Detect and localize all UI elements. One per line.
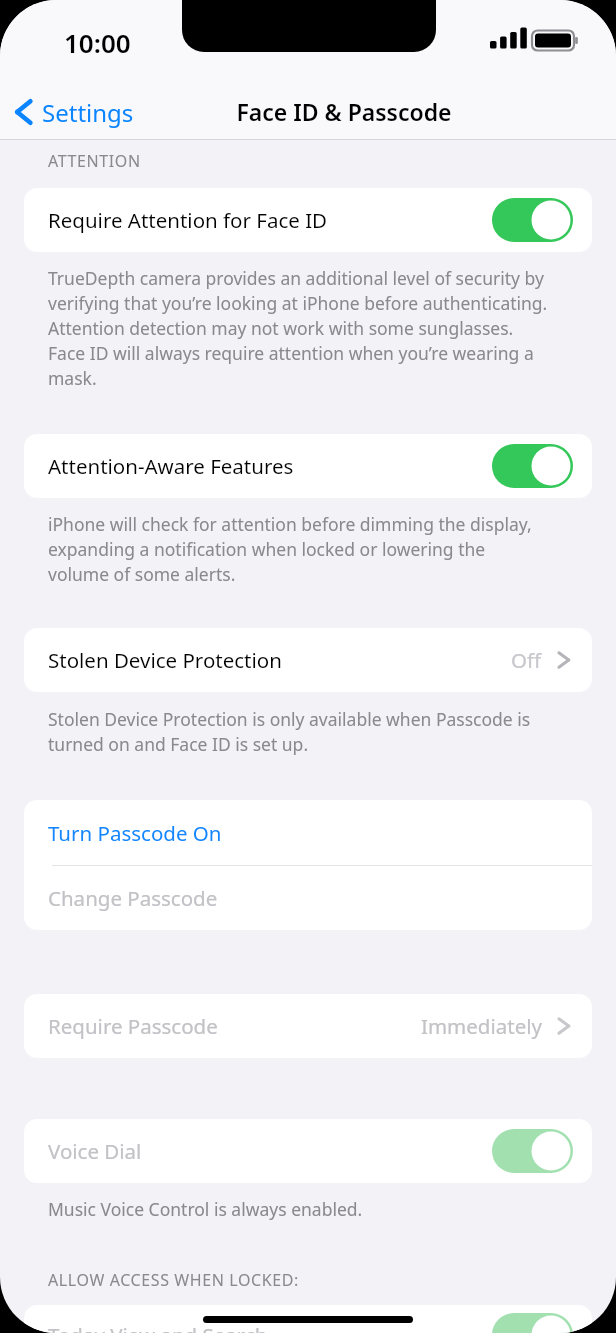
button[interactable]: Toggle [492,198,573,242]
button[interactable]: Toggle [492,1313,573,1333]
button[interactable]: Require Passcode [24,994,592,1058]
staticText: ATTENTION [48,150,141,172]
staticText: Require Passcode [48,1012,218,1040]
staticText: Attention-Aware Features [48,452,294,480]
staticText: 10:00 [64,25,131,60]
staticText: Turn Passcode On [48,819,222,847]
button[interactable]: Turn Passcode On [24,800,592,865]
staticText: ALLOW ACCESS WHEN LOCKED: [48,1269,299,1291]
button[interactable]: Toggle [492,1129,573,1173]
button[interactable]: Settings [8,90,140,134]
button[interactable]: Voice Dial [24,1119,592,1183]
staticText: Today View and Search [48,1321,268,1333]
staticText: Off [511,646,542,674]
staticText: Voice Dial [48,1137,142,1165]
staticText: TrueDepth camera provides an additional … [48,266,550,390]
button[interactable]: Require Attention for Face ID [24,188,592,252]
staticText: Face ID & Passcode [36,96,616,127]
staticText: Require Attention for Face ID [48,206,328,234]
button[interactable]: Stolen Device Protection [24,628,592,692]
staticText: Change Passcode [48,884,218,912]
button[interactable]: Attention-Aware Features [24,434,592,498]
button[interactable]: Today View and Search [24,1305,592,1333]
staticText: Stolen Device Protection [48,646,282,674]
button[interactable]: Change Passcode [24,866,592,930]
button[interactable]: Toggle [492,444,573,488]
staticText: iPhone will check for attention before d… [48,512,548,586]
staticText: Immediately [421,1012,542,1040]
staticText: Music Voice Control is always enabled. [48,1197,548,1221]
staticText: Stolen Device Protection is only availab… [48,707,548,756]
staticText: Settings [42,96,134,129]
